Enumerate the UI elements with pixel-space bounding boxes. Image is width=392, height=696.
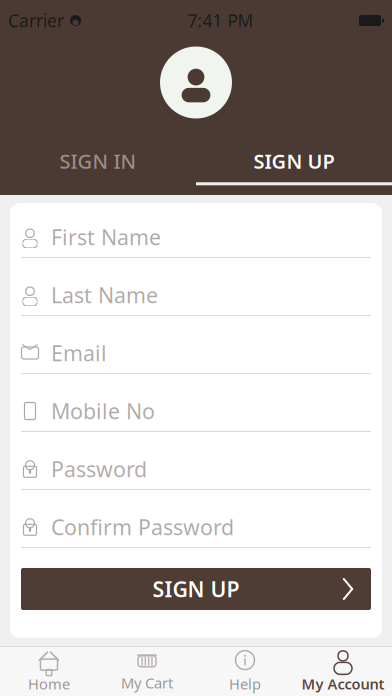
staticText: First Name <box>51 223 161 251</box>
staticText: My Cart <box>121 673 173 693</box>
staticText: SIGN UP <box>253 148 334 174</box>
staticText: Carrier <box>8 9 64 32</box>
button[interactable]: My Cart <box>98 648 196 694</box>
staticText: Home <box>28 674 70 694</box>
staticText: 7:41 PM <box>187 9 253 32</box>
staticText: SIGN UP <box>152 575 239 603</box>
staticText: Password <box>51 455 147 483</box>
staticText: Email <box>51 339 107 367</box>
button[interactable]: SIGN UP <box>21 568 371 610</box>
button[interactable]: SIGN UP <box>196 140 392 184</box>
button[interactable]: Email <box>21 333 371 374</box>
button[interactable]: Home <box>0 648 98 694</box>
button[interactable]: Last Name <box>21 275 371 316</box>
button[interactable]: Confirm Password <box>21 507 371 548</box>
staticText: Confirm Password <box>51 513 234 541</box>
button[interactable]: First Name <box>21 217 371 258</box>
staticText: Last Name <box>51 281 158 309</box>
button[interactable]: Password <box>21 449 371 490</box>
staticText: Help <box>229 674 261 694</box>
button[interactable]: SIGN IN <box>0 140 196 184</box>
staticText: SIGN IN <box>59 148 136 174</box>
button[interactable]: Mobile No <box>21 391 371 432</box>
staticText: Mobile No <box>51 397 155 425</box>
button[interactable]: My Account <box>294 648 392 694</box>
button[interactable]: Help <box>196 648 294 694</box>
staticText: My Account <box>301 674 384 694</box>
